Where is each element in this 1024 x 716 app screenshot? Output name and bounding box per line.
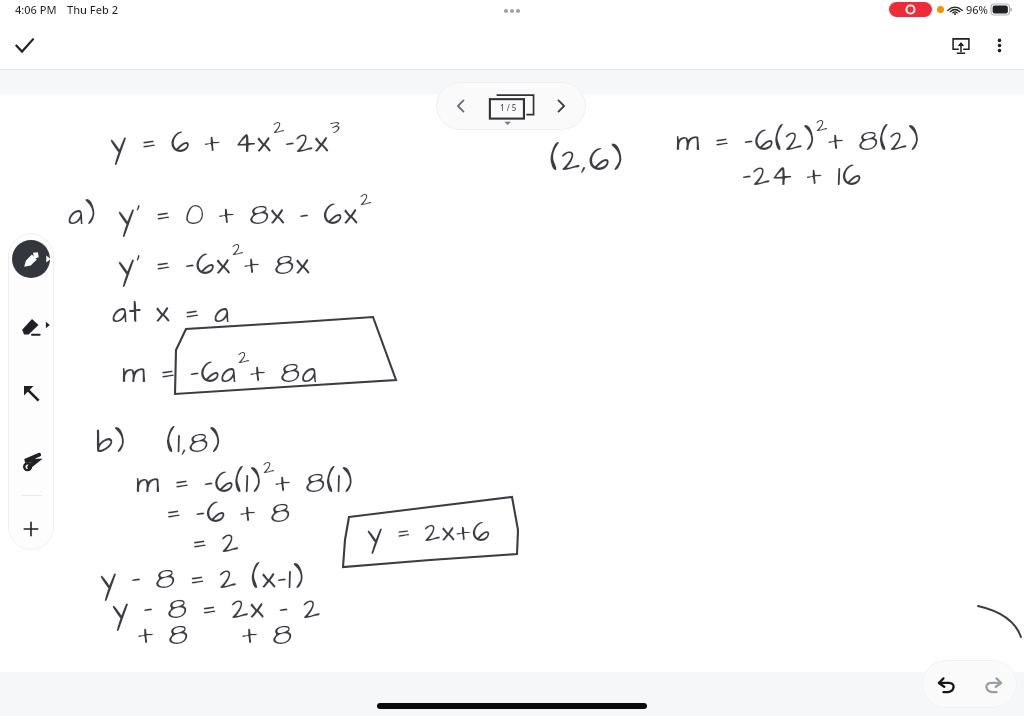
staticText: = 2: [192, 522, 241, 564]
staticText: + 8a: [250, 352, 319, 394]
button[interactable]: Add: [11, 509, 51, 549]
button[interactable]: Present to screen: [942, 26, 980, 64]
staticText: -2x: [285, 122, 330, 164]
staticText: y = 2x+6: [367, 513, 492, 552]
staticText: 1 / 5: [500, 102, 517, 113]
staticText: + 8(2): [828, 120, 921, 162]
staticText: 2: [360, 185, 372, 213]
button[interactable]: More options: [980, 26, 1018, 64]
staticText: m = -6a: [122, 352, 238, 394]
staticText: a): [68, 194, 97, 236]
staticText: y' = -6x: [118, 244, 232, 286]
staticText: 2: [232, 235, 244, 263]
staticText: m = -6(1): [136, 462, 263, 504]
staticText: 3: [330, 113, 341, 141]
staticText: (2,6): [550, 137, 624, 183]
staticText: 4:06 PM: [15, 2, 57, 17]
staticText: 2: [263, 453, 275, 481]
staticText: y - 8 = 2 (x-1): [100, 558, 305, 600]
staticText: 2: [238, 343, 250, 371]
staticText: + 8: [242, 614, 294, 656]
staticText: + 8: [138, 614, 190, 656]
staticText: + 8x: [244, 244, 311, 286]
button[interactable]: Redo: [975, 666, 1011, 702]
staticText: y' = 0 + 8x - 6x: [118, 194, 360, 236]
staticText: + 8(1): [275, 462, 354, 504]
button[interactable]: Previous page: [446, 91, 476, 121]
staticText: = -6 + 8: [166, 492, 292, 534]
staticText: b) (1,8): [96, 422, 222, 464]
button[interactable]: Select: [11, 373, 51, 413]
button[interactable]: Undo: [928, 666, 964, 702]
button[interactable]: Eraser: [11, 305, 51, 345]
button[interactable]: Pen: [9, 237, 53, 281]
button[interactable]: Next page: [546, 91, 576, 121]
staticText: at x = a: [112, 292, 231, 334]
button[interactable]: 1 / 5: [487, 88, 535, 124]
staticText: 2: [816, 111, 828, 139]
staticText: -24 + 16: [742, 155, 863, 197]
button[interactable]: Laser pointer: [11, 441, 51, 481]
staticText: 2: [273, 113, 285, 141]
staticText: y - 8 = 2x - 2: [112, 588, 322, 630]
staticText: m = -6(2): [676, 120, 816, 162]
staticText: y = 6 + 4x: [110, 122, 273, 164]
staticText: Thu Feb 2: [67, 2, 118, 17]
button[interactable]: Done: [6, 27, 42, 63]
staticText: 96%: [966, 2, 988, 17]
